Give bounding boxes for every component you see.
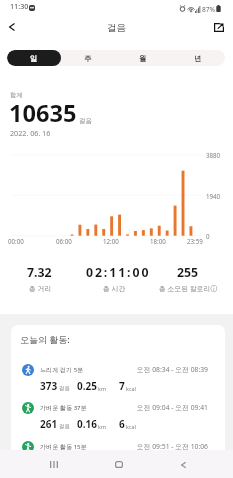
staticText: km [98,423,106,430]
staticText: 7.32 [27,264,52,281]
button[interactable]: 주 [61,50,115,66]
button[interactable]: Recent apps [41,452,66,477]
staticText: 걸음 [59,385,70,392]
button[interactable]: 255 [151,264,225,293]
button[interactable]: 년 [170,50,225,66]
staticText: km [98,385,106,392]
staticText: 3880 [206,151,221,159]
button[interactable]: Open in new window [207,15,231,39]
staticText: 0.16 [77,417,97,431]
button[interactable]: 느리게 걷기 5분 [11,364,225,398]
staticText: 월 [139,54,147,63]
staticText: 오늘의 활동: [20,333,70,345]
staticText: kcal [126,385,136,392]
staticText: 걸음 [0,22,233,34]
staticText: 2022. 06. 16 [10,128,51,138]
staticText: 일 [30,54,38,63]
staticText: 오전 09:04 - 오전 09:41 [11,403,208,412]
staticText: 합계 [10,91,23,99]
staticText: 87% [202,5,216,14]
staticText: 주 [84,54,92,63]
staticText: 18:00 [150,237,166,245]
staticText: 261 [40,417,58,431]
staticText: 373 [40,379,58,393]
staticText: 0.25 [77,379,97,393]
staticText: 총 시간 [103,284,126,293]
staticText: 총 소모된 칼로리ⓘ [159,284,218,293]
staticText: 걸음 [59,423,70,430]
staticText: 가벼운 활동 15분 [40,442,87,450]
staticText: 오전 08:34 - 오전 08:39 [11,365,208,374]
staticText: 년 [194,54,202,63]
staticText: 06:00 [56,237,72,245]
button[interactable]: 가벼운 활동 37분 [11,402,225,436]
staticText: kcal [126,423,136,430]
staticText: 23:59 [187,237,203,245]
staticText: 12:00 [103,237,119,245]
staticText: 11:30 [10,1,29,11]
staticText: 00:00 [8,237,24,245]
button[interactable]: 7.32 [4,264,77,293]
staticText: 총 거리 [29,284,52,293]
staticText: 0 [206,232,210,240]
staticText: 02:11:00 [86,264,151,281]
staticText: 255 [177,264,199,281]
button[interactable]: Home [106,452,131,477]
staticText: 6 [119,417,125,431]
staticText: 7 [119,379,125,393]
staticText: 1940 [206,192,221,200]
staticText: 10635 [9,97,77,129]
staticText: 오전 09:51 - 오전 10:06 [11,442,208,451]
button[interactable]: 가벼운 활동 15분 [11,441,225,461]
button[interactable]: Back [0,15,24,39]
button[interactable]: 월 [115,50,170,66]
button[interactable]: Back [171,452,196,477]
button[interactable]: 02:11:00 [77,264,151,293]
staticText: 걸음 [79,117,92,125]
button[interactable]: 일 [7,50,61,66]
staticText: 가벼운 활동 37분 [40,403,87,411]
staticText: 느리게 걷기 5분 [40,365,84,373]
